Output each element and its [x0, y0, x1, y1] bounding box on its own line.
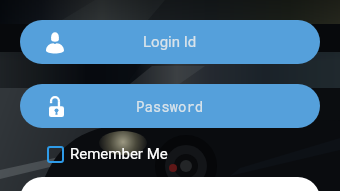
button[interactable]: Password: [20, 84, 320, 128]
button[interactable]: [20, 177, 320, 191]
button[interactable]: Remember Me: [47, 145, 168, 163]
staticText: Remember Me: [70, 145, 168, 163]
staticText: Password: [136, 97, 204, 115]
staticText: Login Id: [143, 33, 197, 51]
button[interactable]: Login Id: [20, 20, 320, 64]
